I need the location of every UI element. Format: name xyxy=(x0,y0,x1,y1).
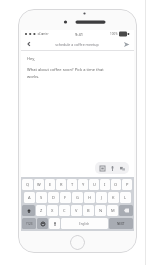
staticText: J xyxy=(101,195,103,200)
staticText: U xyxy=(93,182,96,187)
staticText: A xyxy=(28,195,31,200)
button[interactable]: I xyxy=(100,179,110,190)
button[interactable]: K xyxy=(108,192,119,203)
button[interactable]: L xyxy=(120,192,131,203)
staticText: C xyxy=(63,208,66,213)
button[interactable]: T xyxy=(67,179,77,190)
button[interactable]: H xyxy=(84,192,95,203)
staticText: X xyxy=(51,208,54,213)
button[interactable]: Space xyxy=(61,218,108,229)
button[interactable]: B xyxy=(83,205,94,216)
button[interactable]: C xyxy=(59,205,70,216)
staticText: NEXT xyxy=(117,222,125,226)
staticText: What about coffee soon? Pick a time that… xyxy=(27,67,104,80)
staticText: G xyxy=(76,195,79,200)
staticText: T xyxy=(71,182,74,187)
staticText: R xyxy=(60,182,63,187)
staticText: Hey, xyxy=(27,56,36,61)
staticText: V xyxy=(75,208,78,213)
button[interactable]: Next xyxy=(109,218,133,229)
staticText: N xyxy=(99,208,103,213)
staticText: M xyxy=(111,208,115,213)
button[interactable]: W xyxy=(34,179,44,190)
staticText: Z xyxy=(40,208,43,213)
button[interactable]: J xyxy=(96,192,107,203)
button[interactable]: Home xyxy=(70,235,85,250)
button[interactable]: Z xyxy=(36,205,46,216)
staticText: W xyxy=(37,182,41,187)
button[interactable]: G xyxy=(72,192,83,203)
button[interactable]: X xyxy=(47,205,58,216)
button[interactable]: Back xyxy=(24,39,34,49)
button[interactable]: Voice input xyxy=(49,218,60,229)
button[interactable]: D xyxy=(48,192,59,203)
button[interactable]: M xyxy=(107,205,118,216)
staticText: schedule a coffee meetup xyxy=(55,42,99,47)
button[interactable]: Y xyxy=(78,179,88,190)
button[interactable]: R xyxy=(56,179,66,190)
staticText: I xyxy=(104,182,106,187)
staticText: D xyxy=(52,195,55,200)
staticText: Q xyxy=(26,182,30,187)
staticText: L xyxy=(124,195,127,200)
staticText: 9:41 xyxy=(75,32,83,37)
button[interactable]: E xyxy=(45,179,55,190)
staticText: 100% xyxy=(110,32,118,36)
button[interactable]: Insert image xyxy=(98,164,106,172)
button[interactable]: Symbols xyxy=(22,218,36,229)
button[interactable]: Emoji xyxy=(37,218,48,229)
button[interactable]: O xyxy=(111,179,121,190)
staticText: English xyxy=(79,222,90,226)
staticText: ?123 xyxy=(26,222,33,226)
button[interactable]: Send xyxy=(121,39,131,49)
staticText: P xyxy=(126,182,129,187)
staticText: S xyxy=(40,195,43,200)
button[interactable]: N xyxy=(95,205,106,216)
staticText: Y xyxy=(82,182,85,187)
button[interactable]: S xyxy=(36,192,47,203)
button[interactable]: More options xyxy=(118,164,126,172)
staticText: F xyxy=(64,195,67,200)
button[interactable]: V xyxy=(71,205,82,216)
button[interactable]: Shift xyxy=(22,205,35,216)
staticText: O xyxy=(114,182,118,187)
staticText: B xyxy=(87,208,90,213)
button[interactable]: U xyxy=(89,179,99,190)
staticText: H xyxy=(88,195,91,200)
button[interactable]: Backspace xyxy=(119,205,133,216)
staticText: E xyxy=(49,182,52,187)
staticText: K xyxy=(112,195,115,200)
button[interactable]: A xyxy=(24,192,35,203)
button[interactable]: Q xyxy=(22,179,33,190)
button[interactable]: F xyxy=(60,192,71,203)
button[interactable]: P xyxy=(122,179,132,190)
staticText: Carrier xyxy=(39,32,49,36)
button[interactable]: Attach xyxy=(108,164,116,172)
